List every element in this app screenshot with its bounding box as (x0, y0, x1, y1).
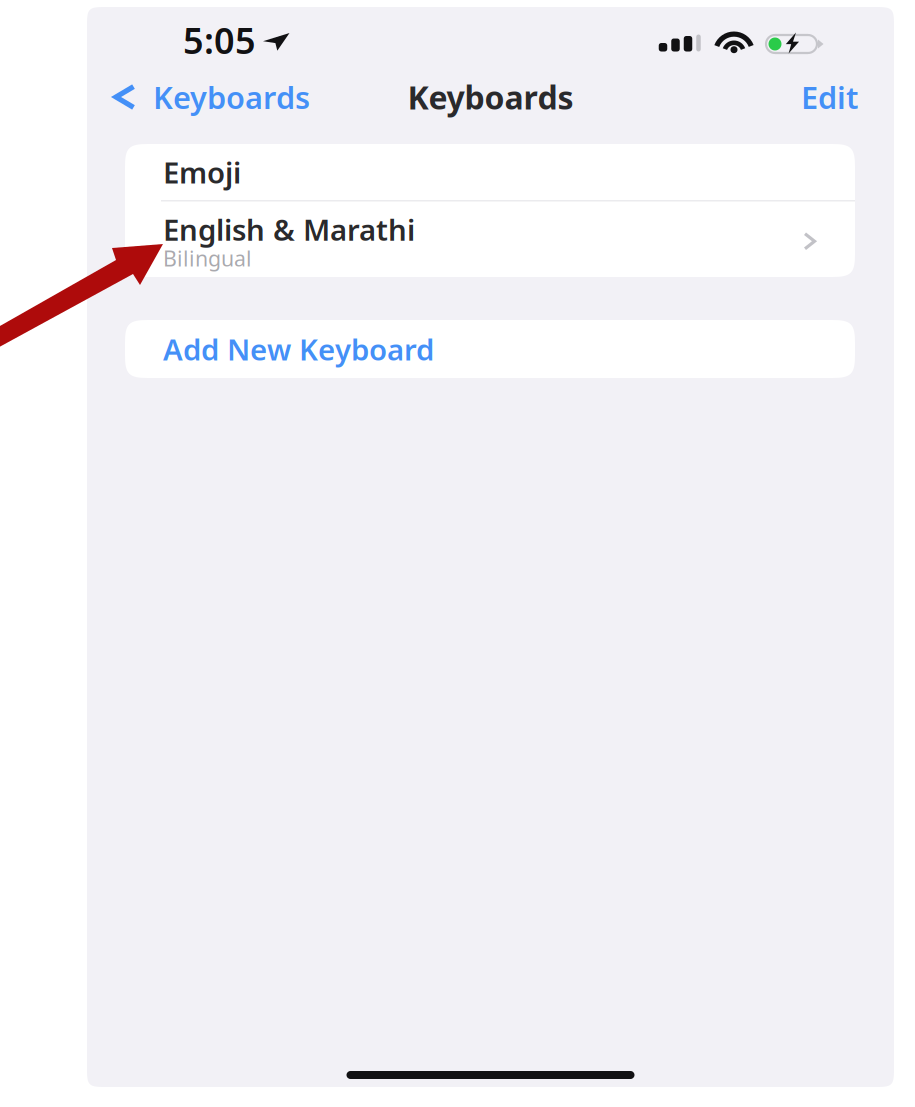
button[interactable]: Emoji (125, 144, 855, 200)
staticText: English & Marathi (163, 210, 415, 249)
button[interactable]: Edit (775, 75, 894, 119)
staticText: Add New Keyboard (163, 329, 434, 368)
button[interactable]: Keyboards (87, 75, 324, 119)
staticText: Edit (801, 77, 858, 117)
staticText: Bilingual (163, 244, 252, 272)
staticText: Emoji (163, 152, 241, 191)
staticText: 5:05 (183, 16, 256, 64)
button[interactable]: English & Marathi (125, 201, 855, 277)
staticText: Keyboards (407, 76, 573, 118)
staticText: Keyboards (153, 77, 310, 117)
button[interactable]: Add New Keyboard (125, 320, 855, 378)
